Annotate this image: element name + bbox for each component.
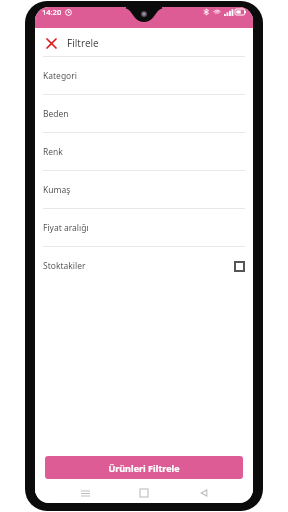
button[interactable]: Beden (35, 95, 253, 133)
staticText: Fiyat aralığı (43, 222, 89, 234)
button[interactable]: Geri (194, 483, 214, 503)
staticText: 14:20 (42, 7, 62, 17)
staticText: Filtrele (67, 36, 99, 50)
button[interactable]: Ürünleri Filtrele (45, 456, 243, 479)
staticText: Kumaş (43, 184, 71, 196)
button[interactable]: Stoktakiler (35, 247, 253, 285)
staticText: Ürünleri Filtrele (108, 462, 180, 474)
button[interactable]: Kapat (41, 33, 61, 53)
button[interactable]: Son uygulamalar (75, 483, 95, 503)
staticText: Kategori (43, 70, 77, 82)
button[interactable]: Renk (35, 133, 253, 171)
button[interactable]: Ana ekran (134, 483, 154, 503)
staticText: Stoktakiler (43, 260, 86, 272)
staticText: Renk (43, 146, 63, 158)
button[interactable]: Kategori (35, 57, 253, 95)
button[interactable]: Kumaş (35, 171, 253, 209)
button[interactable]: Fiyat aralığı (35, 209, 253, 247)
staticText: Beden (43, 108, 69, 120)
